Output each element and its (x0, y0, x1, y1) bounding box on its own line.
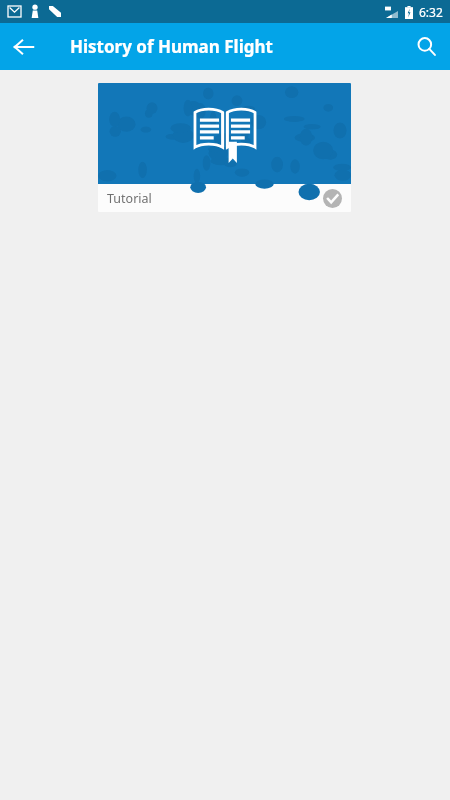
staticText: 6:32 (419, 4, 443, 20)
staticText: Tutorial (107, 190, 152, 207)
button[interactable]: Search (402, 23, 450, 70)
button[interactable]: Tutorial (98, 83, 351, 212)
button[interactable]: Back (0, 23, 48, 70)
staticText: History of Human Flight (70, 35, 273, 58)
